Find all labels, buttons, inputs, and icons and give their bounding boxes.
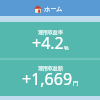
staticText: 運用収益額	[38, 65, 63, 71]
staticText: 円	[73, 80, 79, 87]
staticText: %	[64, 44, 69, 51]
staticText: ホーム	[44, 5, 63, 13]
staticText: +4.2	[32, 32, 64, 54]
button[interactable]: 運用収益額	[0, 60, 100, 100]
staticText: 運用収益率	[38, 29, 63, 35]
button[interactable]: Home	[0, 0, 100, 16]
button[interactable]: 運用収益率	[0, 22, 100, 58]
other: Home	[34, 5, 42, 13]
staticText: +1,669	[22, 68, 73, 90]
